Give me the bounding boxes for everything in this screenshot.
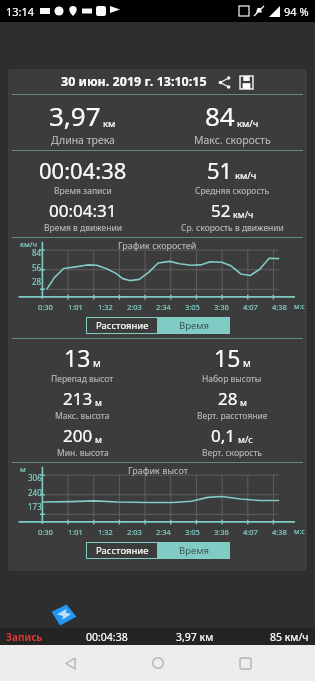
staticText: 4:38 <box>272 302 287 312</box>
staticText: Верт. расстояние <box>197 410 268 422</box>
staticText: м <box>20 464 26 474</box>
button[interactable]: Home <box>140 645 176 681</box>
staticText: 0:30 <box>38 527 53 537</box>
staticText: 84 <box>205 98 235 133</box>
staticText: Средняя скорость <box>195 185 270 197</box>
staticText: 1:01 <box>68 527 83 537</box>
staticText: 306 <box>28 472 42 483</box>
staticText: 94 % <box>284 4 309 19</box>
staticText: 85 км/ч <box>270 630 309 644</box>
button[interactable]: Расстояние <box>86 317 158 334</box>
staticText: 3:36 <box>214 302 229 312</box>
staticText: 3:36 <box>214 527 229 537</box>
staticText: км <box>103 117 116 130</box>
staticText: Расстояние <box>96 319 149 332</box>
staticText: Перепад высот <box>51 373 114 385</box>
staticText: Ср. скорость в движении <box>181 222 284 234</box>
staticText: Расстояние <box>96 544 149 557</box>
staticText: 51 <box>207 155 233 185</box>
staticText: 3:05 <box>185 302 200 312</box>
staticText: Макс. высота <box>55 410 110 422</box>
staticText: м <box>240 396 247 408</box>
staticText: 2:34 <box>156 302 171 312</box>
staticText: 3,97 <box>49 98 101 133</box>
staticText: 1:01 <box>68 302 83 312</box>
staticText: м <box>95 396 102 408</box>
staticText: м <box>95 433 102 445</box>
staticText: 4:07 <box>243 527 258 537</box>
button[interactable]: Save <box>237 73 255 91</box>
staticText: 213 <box>63 387 93 410</box>
staticText: 56 <box>32 262 42 273</box>
staticText: 28 <box>218 387 238 410</box>
staticText: 15 <box>214 342 241 373</box>
staticText: м <box>243 356 251 370</box>
staticText: км/ч <box>235 169 257 182</box>
staticText: 00:04:38 <box>86 630 128 644</box>
staticText: 200 <box>63 424 93 447</box>
staticText: Время в движении <box>44 222 122 234</box>
staticText: 30 июн. 2019 г. 13:10:15 <box>61 73 207 90</box>
staticText: 240 <box>28 487 42 498</box>
staticText: 4:38 <box>272 527 287 537</box>
staticText: 2:34 <box>156 527 171 537</box>
staticText: км/ч <box>20 239 37 249</box>
staticText: Верт. скорость <box>202 447 262 459</box>
staticText: км/ч <box>233 208 254 220</box>
staticText: Время <box>179 544 209 557</box>
button[interactable]: Back <box>52 645 88 681</box>
staticText: Набор высоты <box>202 373 262 385</box>
staticText: м/с <box>238 433 253 445</box>
staticText: 2:03 <box>127 527 142 537</box>
staticText: м:с <box>294 302 305 312</box>
staticText: Мин. высота <box>57 447 109 459</box>
button[interactable]: Share <box>215 73 233 91</box>
staticText: 00:04:38 <box>39 155 127 185</box>
staticText: 1:32 <box>98 302 113 312</box>
button[interactable]: Время <box>158 542 230 559</box>
staticText: Время <box>179 319 209 332</box>
staticText: 0:30 <box>38 302 53 312</box>
staticText: 52 <box>211 199 231 222</box>
staticText: м <box>93 356 101 370</box>
staticText: Время записи <box>54 185 112 197</box>
staticText: 84 <box>32 247 42 258</box>
staticText: 173 <box>28 501 42 512</box>
staticText: 2:03 <box>127 302 142 312</box>
staticText: График скоростей <box>118 239 197 251</box>
staticText: Макс. скорость <box>194 133 271 147</box>
button[interactable]: Время <box>158 317 230 334</box>
button[interactable]: Recent apps <box>227 645 263 681</box>
button[interactable]: Расстояние <box>86 542 158 559</box>
staticText: 1:32 <box>98 527 113 537</box>
staticText: 3:05 <box>185 527 200 537</box>
staticText: 4:07 <box>243 302 258 312</box>
staticText: Запись <box>6 630 43 644</box>
staticText: 28 <box>32 276 42 287</box>
staticText: 00:04:31 <box>49 199 117 222</box>
staticText: 13 <box>64 342 91 373</box>
staticText: 0,1 <box>211 424 236 447</box>
staticText: 13:14 <box>6 4 35 19</box>
staticText: График высот <box>128 464 188 476</box>
staticText: Длина трека <box>51 133 115 147</box>
staticText: км/ч <box>237 117 259 130</box>
staticText: м:с <box>294 527 305 537</box>
button[interactable]: Record <box>48 604 78 626</box>
staticText: 3,97 км <box>176 630 214 644</box>
